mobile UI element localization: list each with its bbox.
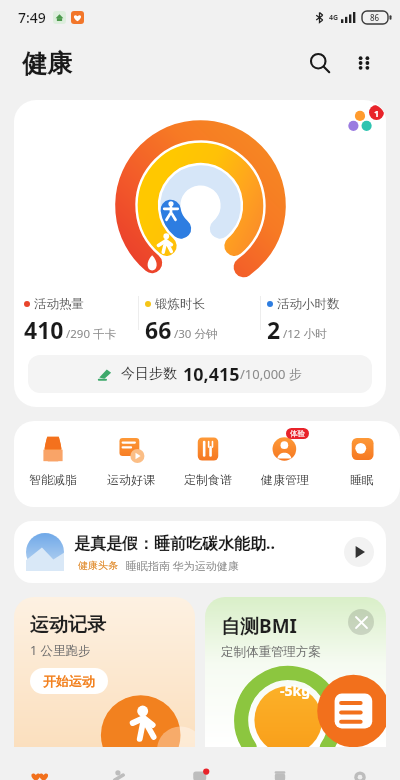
staticText: 体验	[290, 429, 305, 438]
staticText: 定制体重管理方案	[221, 644, 321, 660]
button[interactable]: 开始运动	[30, 668, 108, 694]
button[interactable]: 今日步数	[28, 355, 372, 393]
staticText: 开始运动	[43, 673, 95, 689]
button[interactable]: 活动热量	[18, 296, 138, 345]
button[interactable]: Play	[344, 537, 374, 567]
staticText: 1 公里跑步	[30, 642, 91, 659]
button[interactable]: 锻炼时长	[139, 296, 260, 345]
button[interactable]: 定制食谱	[169, 431, 246, 507]
button[interactable]: Close	[348, 609, 374, 635]
staticText: 睡眠指南 华为运动健康	[126, 558, 239, 573]
button[interactable]: -5kg	[205, 597, 386, 747]
staticText: /30 分钟	[174, 326, 218, 342]
staticText: 410	[24, 314, 64, 345]
staticText: 自测BMI	[221, 613, 297, 639]
staticText: /290 千卡	[66, 326, 117, 342]
button[interactable]: 运动好课	[92, 431, 169, 507]
staticText: 健康头条	[78, 559, 118, 572]
button[interactable]: Health	[0, 766, 80, 780]
button[interactable]: 活动小时数	[261, 296, 382, 345]
button[interactable]: 智能减脂	[14, 431, 92, 507]
staticText: 智能减脂	[29, 472, 77, 487]
button[interactable]: Device	[160, 766, 240, 780]
button[interactable]: 睡眠	[323, 431, 400, 507]
staticText: 定制食谱	[184, 472, 232, 487]
button[interactable]: Discover	[240, 766, 320, 780]
staticText: 健康管理	[261, 472, 309, 487]
staticText: 健康	[22, 48, 72, 79]
button[interactable]: More options	[342, 41, 386, 85]
staticText: 66	[145, 314, 172, 345]
staticText: 10,415	[183, 362, 240, 387]
button[interactable]: 运动记录	[14, 597, 195, 747]
staticText: /12 小时	[283, 326, 327, 342]
button[interactable]: Exercise	[80, 766, 160, 780]
staticText: 锻炼时长	[155, 296, 205, 312]
button[interactable]: Apps	[334, 104, 386, 138]
button[interactable]: Apps	[14, 100, 386, 407]
button[interactable]: 体验	[246, 431, 323, 507]
staticText: 今日步数	[121, 365, 177, 383]
staticText: 86	[370, 12, 380, 23]
staticText: 睡眠	[350, 472, 374, 487]
staticText: 活动热量	[34, 296, 84, 312]
staticText: 活动小时数	[277, 296, 340, 312]
staticText: -5kg	[280, 681, 311, 700]
button[interactable]: Search	[298, 41, 342, 85]
staticText: 4G	[329, 13, 339, 23]
button[interactable]: 是真是假：睡前吃碳水能助..	[14, 521, 386, 583]
staticText: 7:49	[18, 8, 46, 27]
staticText: 1	[374, 107, 380, 119]
staticText: 运动记录	[30, 613, 106, 637]
button[interactable]: Me	[320, 766, 400, 780]
staticText: 2	[267, 314, 281, 345]
staticText: 是真是假：睡前吃碳水能助..	[74, 532, 275, 554]
staticText: 运动好课	[107, 472, 155, 487]
staticText: /10,000 步	[240, 365, 302, 383]
